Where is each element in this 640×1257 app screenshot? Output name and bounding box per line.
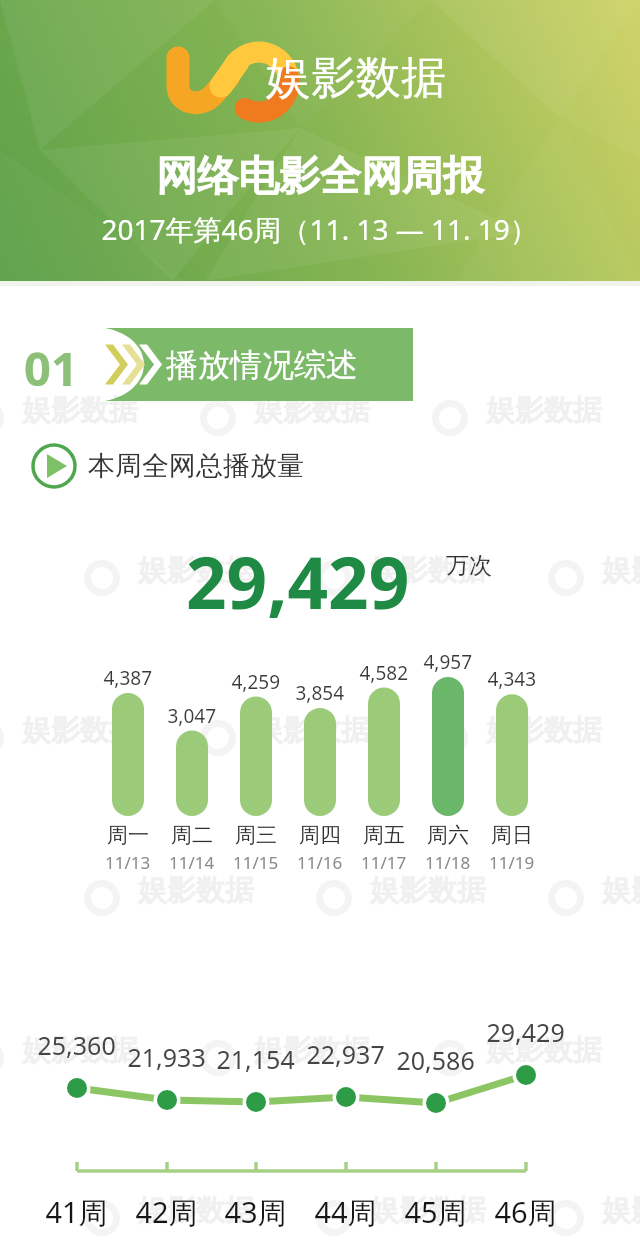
button[interactable]: 网络电影全网周报 2017年第46周报告 — [0, 0, 640, 1257]
